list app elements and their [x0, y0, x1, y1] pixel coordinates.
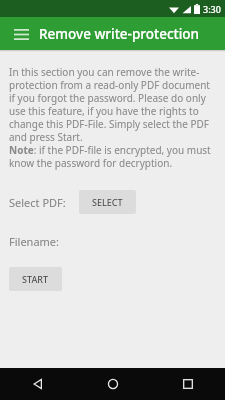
staticText: Remove write-protection — [39, 25, 200, 43]
button[interactable]: Open navigation menu — [8, 21, 34, 47]
button[interactable]: Back — [0, 368, 75, 400]
button[interactable]: SELECT — [79, 190, 136, 214]
staticText: 3:30 — [203, 3, 221, 15]
staticText: Filename: — [9, 234, 59, 249]
button[interactable]: Recent apps — [150, 368, 225, 400]
staticText: In this section you can remove the write… — [9, 65, 216, 170]
staticText: Select PDF: — [9, 195, 66, 210]
button[interactable]: START — [9, 267, 62, 291]
staticText: START — [22, 273, 49, 285]
button[interactable]: Home — [75, 368, 150, 400]
staticText: SELECT — [92, 196, 123, 208]
